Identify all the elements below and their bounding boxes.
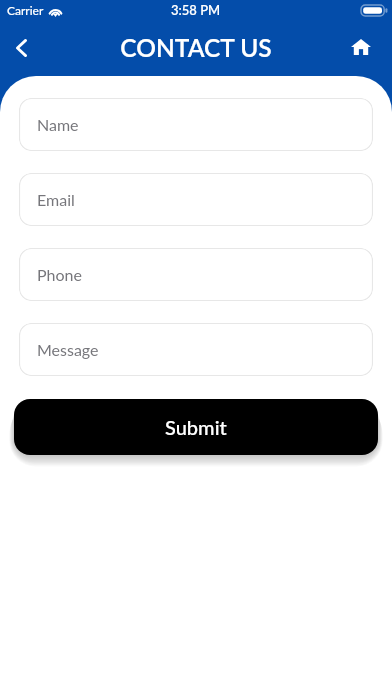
staticText: CONTACT US bbox=[120, 33, 272, 62]
button[interactable]: Back bbox=[0, 25, 44, 69]
staticText: Carrier bbox=[7, 3, 44, 17]
staticText: Message bbox=[37, 340, 99, 359]
button[interactable]: Name bbox=[19, 98, 373, 151]
staticText: Name bbox=[37, 115, 79, 134]
staticText: Phone bbox=[37, 265, 82, 284]
button[interactable]: Home bbox=[348, 25, 392, 69]
button[interactable]: Email bbox=[19, 173, 373, 226]
staticText: 3:58 PM bbox=[171, 2, 221, 18]
button[interactable]: Message bbox=[19, 323, 373, 376]
staticText: Submit bbox=[165, 415, 227, 439]
staticText: Email bbox=[37, 190, 75, 209]
button[interactable]: Phone bbox=[19, 248, 373, 301]
button[interactable]: Submit bbox=[14, 399, 378, 455]
